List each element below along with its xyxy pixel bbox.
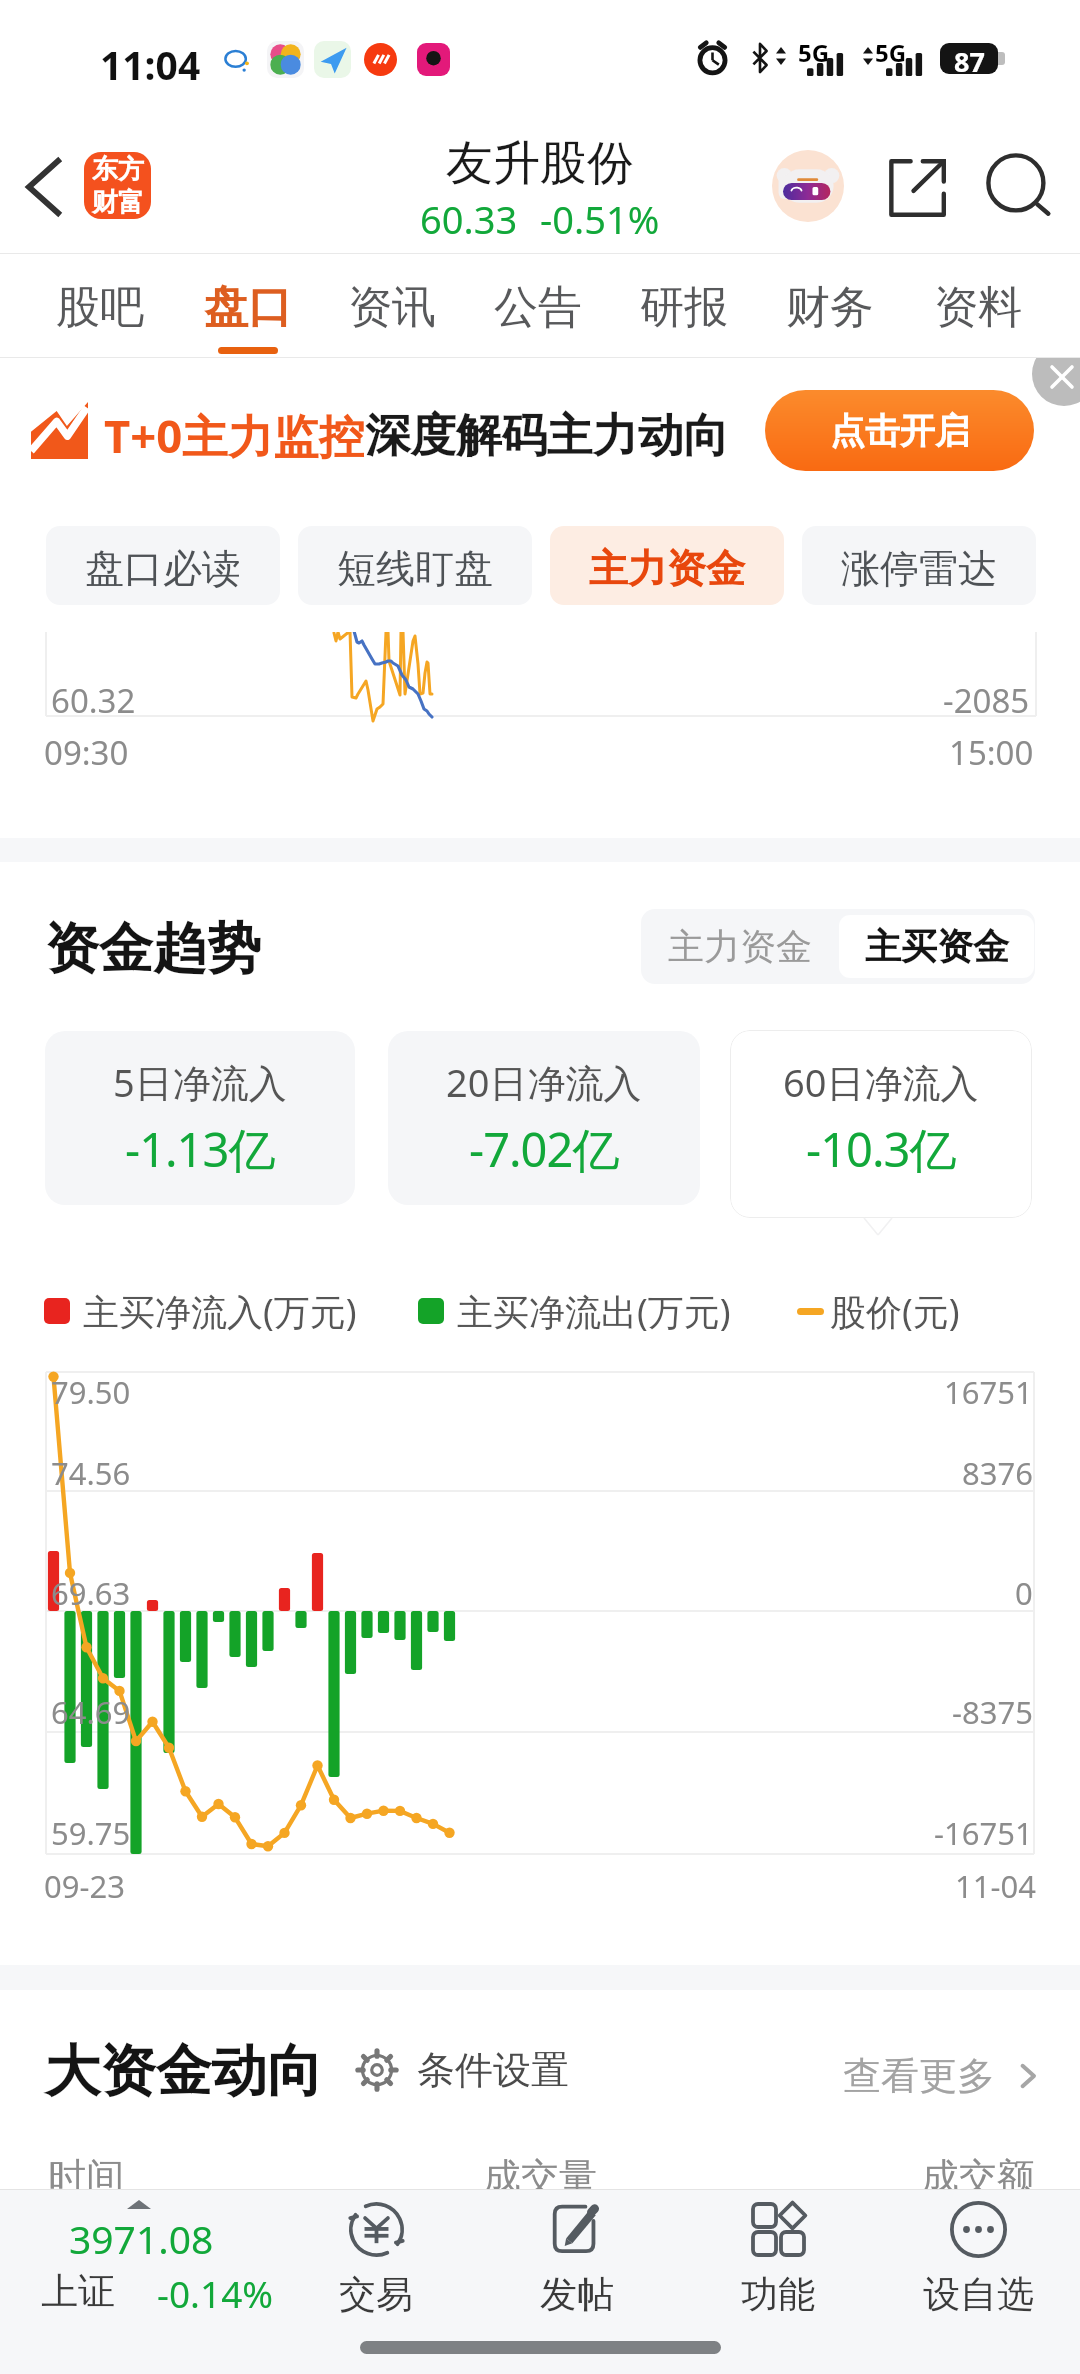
staticText: 8376: [962, 1452, 1033, 1494]
button[interactable]: 主力资金: [641, 909, 838, 984]
button[interactable]: 涨停雷达: [802, 526, 1036, 605]
staticText: 69.63: [51, 1572, 131, 1614]
staticText: 主力资金: [668, 924, 812, 969]
staticText: 59.75: [51, 1812, 131, 1854]
button[interactable]: 60日净流入: [730, 1030, 1032, 1218]
staticText: 设自选: [923, 2271, 1034, 2318]
staticText: 交易: [339, 2271, 413, 2318]
button[interactable]: 条件设置: [355, 2046, 569, 2094]
staticText: 成交量: [483, 2153, 597, 2201]
staticText: 5日净流入: [113, 1056, 287, 1108]
staticText: 74.56: [51, 1452, 131, 1494]
staticText: 友升股份: [446, 134, 634, 193]
staticText: 财富: [92, 186, 144, 219]
staticText: 盘口必读: [85, 544, 241, 593]
staticText: 主买资金: [865, 924, 1009, 969]
staticText: -0.14%: [157, 2268, 274, 2318]
button[interactable]: Close banner: [0, 358, 1080, 408]
staticText: 11-04: [955, 1865, 1036, 1907]
staticText: 上证: [41, 2268, 115, 2315]
staticText: 研报: [640, 280, 728, 335]
button[interactable]: 发帖: [477, 2193, 677, 2343]
staticText: 09:30: [44, 730, 129, 775]
button[interactable]: 3971.08: [0, 2189, 276, 2349]
staticText: -16751: [934, 1812, 1033, 1854]
button[interactable]: 设自选: [878, 2193, 1078, 2343]
staticText: 发帖: [540, 2271, 614, 2318]
button[interactable]: 研报: [632, 254, 736, 358]
staticText: -8375: [952, 1691, 1033, 1733]
staticText: 20日净流入: [446, 1056, 642, 1108]
button[interactable]: 5日净流入: [45, 1031, 355, 1205]
staticText: 64.69: [51, 1691, 131, 1733]
staticText: 11:04: [100, 38, 201, 91]
staticText: -1.13亿: [125, 1117, 275, 1181]
staticText: -7.02亿: [469, 1117, 619, 1181]
staticText: 时间: [48, 2153, 124, 2201]
button[interactable]: 公告: [486, 254, 590, 358]
staticText: 主买净流入(万元): [83, 1287, 357, 1336]
button[interactable]: 短线盯盘: [298, 526, 532, 605]
staticText: 5G: [798, 36, 830, 69]
staticText: 大资金动向: [45, 2037, 323, 2107]
staticText: 查看更多: [843, 2052, 995, 2100]
staticText: 主力资金: [589, 544, 745, 593]
button[interactable]: 股吧: [48, 254, 152, 358]
staticText: 15:00: [949, 730, 1034, 775]
staticText: 16751: [944, 1371, 1033, 1413]
staticText: 资讯: [348, 280, 436, 335]
button[interactable]: 点击开启: [765, 390, 1034, 471]
button[interactable]: 20日净流入: [388, 1031, 700, 1205]
button[interactable]: 盘口必读: [46, 526, 280, 605]
staticText: 5G: [875, 36, 907, 69]
staticText: 点击开启: [830, 409, 970, 453]
staticText: 资金趋势: [45, 915, 261, 983]
button[interactable]: 财务: [778, 254, 882, 358]
button[interactable]: Back: [0, 132, 86, 242]
staticText: 涨停雷达: [841, 544, 997, 593]
staticText: 0: [1015, 1572, 1033, 1614]
button[interactable]: 查看更多: [843, 2052, 1043, 2100]
staticText: 短线盯盘: [337, 544, 493, 593]
button[interactable]: 盘口: [196, 254, 300, 358]
button[interactable]: Search: [980, 147, 1058, 225]
staticText: 09-23: [44, 1865, 125, 1907]
staticText: 条件设置: [417, 2046, 569, 2094]
button[interactable]: 交易: [276, 2193, 476, 2343]
staticText: 3971.08: [69, 2212, 214, 2265]
staticText: 主买净流出(万元): [457, 1287, 731, 1336]
staticText: 60.32: [51, 678, 136, 723]
staticText: 87: [954, 43, 985, 74]
button[interactable]: 主力资金: [550, 526, 784, 605]
staticText: 60日净流入: [783, 1056, 979, 1108]
staticText: -0.51%: [540, 193, 660, 245]
button[interactable]: 主买资金: [839, 915, 1034, 978]
staticText: 79.50: [51, 1371, 131, 1413]
staticText: 股吧: [56, 280, 144, 335]
staticText: 股价(元): [830, 1287, 960, 1336]
staticText: 功能: [741, 2271, 815, 2318]
staticText: T+0主力监控: [104, 404, 365, 466]
button[interactable]: Share: [878, 149, 956, 227]
button[interactable]: 资讯: [340, 254, 444, 358]
staticText: 深度解码主力动向: [365, 407, 729, 464]
staticText: 资料: [934, 280, 1022, 335]
staticText: 盘口: [204, 280, 292, 335]
button[interactable]: AI assistant: [772, 150, 844, 222]
button[interactable]: 资料: [926, 254, 1030, 358]
staticText: 公告: [494, 280, 582, 335]
button[interactable]: 东方: [84, 152, 151, 219]
staticText: 60.33: [420, 193, 518, 245]
staticText: 成交额: [921, 2153, 1035, 2201]
staticText: 东方: [92, 153, 144, 186]
staticText: -10.3亿: [806, 1117, 956, 1181]
staticText: 财务: [786, 280, 874, 335]
button[interactable]: 功能: [678, 2193, 878, 2343]
staticText: -2085: [943, 678, 1030, 723]
